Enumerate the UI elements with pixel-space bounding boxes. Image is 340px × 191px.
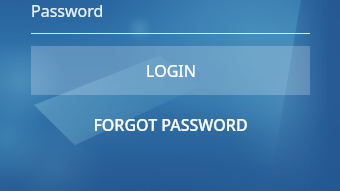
button[interactable]: FORGOT PASSWORD (0, 106, 340, 144)
staticText: FORGOT PASSWORD (93, 114, 248, 136)
button[interactable]: LOGIN (31, 46, 310, 95)
staticText: LOGIN (146, 60, 196, 82)
staticText: Password (31, 0, 104, 22)
